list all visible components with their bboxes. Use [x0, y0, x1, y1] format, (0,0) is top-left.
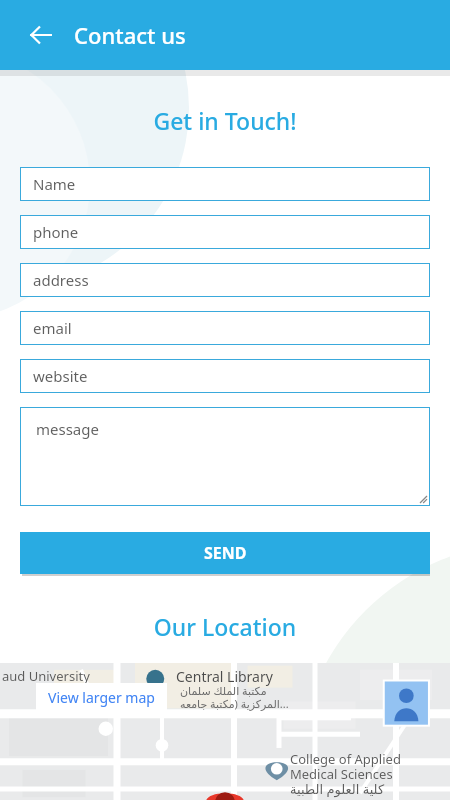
button[interactable]: SEND — [20, 532, 430, 574]
button[interactable]: email — [20, 311, 430, 345]
staticText: email — [33, 318, 72, 338]
staticText: address — [33, 270, 89, 290]
button[interactable]: message — [20, 407, 430, 506]
staticText: View larger map — [48, 688, 155, 707]
staticText: Get in Touch! — [0, 105, 450, 136]
staticText: website — [33, 366, 88, 386]
staticText: College of Applied Medical Sciences كلية… — [290, 750, 401, 798]
button[interactable]: website — [20, 359, 430, 393]
button[interactable]: Back — [18, 12, 64, 58]
button[interactable]: Name — [20, 167, 430, 201]
staticText: phone — [33, 222, 79, 242]
button[interactable]: address — [20, 263, 430, 297]
staticText: Contact us — [74, 20, 186, 50]
staticText: SEND — [204, 542, 247, 564]
staticText: Our Location — [0, 611, 450, 642]
staticText: Central Library — [176, 667, 273, 686]
button[interactable]: View larger map — [36, 683, 167, 712]
staticText: Name — [33, 174, 76, 194]
staticText: aud University — [2, 667, 90, 685]
staticText: message — [36, 419, 99, 439]
staticText: مكتبة الملك سلمان المركزية (مكتبة جامعه.… — [180, 683, 289, 712]
button[interactable]: Map, Our Location — [0, 663, 450, 800]
button[interactable]: phone — [20, 215, 430, 249]
